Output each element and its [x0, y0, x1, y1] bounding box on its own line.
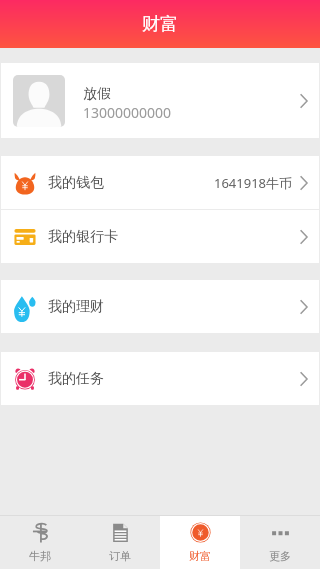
staticText: 放假 [83, 85, 111, 103]
staticText: 我的银行卡 [48, 228, 118, 246]
button[interactable]: 我的理财 [1, 280, 319, 333]
staticText: 1641918牛币 [214, 174, 293, 192]
button[interactable]: 放假 [1, 63, 319, 138]
staticText: 更多 [269, 549, 291, 563]
staticText: 财富 [189, 549, 211, 563]
button[interactable]: 订单 [80, 516, 160, 569]
button[interactable]: 我的任务 [1, 352, 319, 405]
staticText: 13000000000 [83, 103, 172, 122]
staticText: 牛邦 [29, 549, 51, 563]
staticText: 订单 [109, 549, 131, 563]
staticText: 我的钱包 [48, 174, 104, 192]
button[interactable]: 财富 [160, 516, 240, 569]
staticText: 财富 [142, 13, 178, 36]
button[interactable]: 牛邦 [0, 516, 80, 569]
button[interactable]: 我的银行卡 [1, 210, 319, 263]
staticText: 我的理财 [48, 298, 104, 316]
staticText: 我的任务 [48, 370, 104, 388]
button[interactable]: 更多 [240, 516, 320, 569]
button[interactable]: 我的钱包 [1, 156, 319, 209]
